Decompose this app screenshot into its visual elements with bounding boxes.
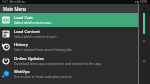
button[interactable]: WebVyu [0, 67, 138, 81]
staticText: 9:41 Main Menu [2, 0, 26, 4]
button[interactable]: History [0, 40, 138, 54]
staticText: Select which content to scan. [14, 35, 58, 39]
staticText: Use on-line or head underplay services. [14, 75, 73, 79]
staticText: Load Content [14, 29, 40, 34]
staticText: Load Cuts [14, 15, 33, 20]
staticText: Select which cuts to scan. [14, 21, 52, 25]
staticText: Select content from recent history jobs. [14, 48, 73, 52]
button[interactable]: Load Cuts [0, 13, 138, 27]
button[interactable]: Online Updates [0, 54, 138, 68]
staticText: Main Menu [3, 6, 27, 12]
staticText: WebVyu [14, 69, 30, 74]
staticText: ▾ ▮ 100% [135, 0, 148, 4]
button[interactable]: Load Content [0, 27, 138, 41]
staticText: Online Updates [14, 56, 44, 61]
staticText: Download latest app components and conte… [14, 62, 103, 66]
staticText: History [14, 42, 28, 47]
